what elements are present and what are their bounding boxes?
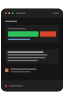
button[interactable]: Reject [40, 31, 56, 37]
button[interactable]: Accept [8, 31, 38, 37]
